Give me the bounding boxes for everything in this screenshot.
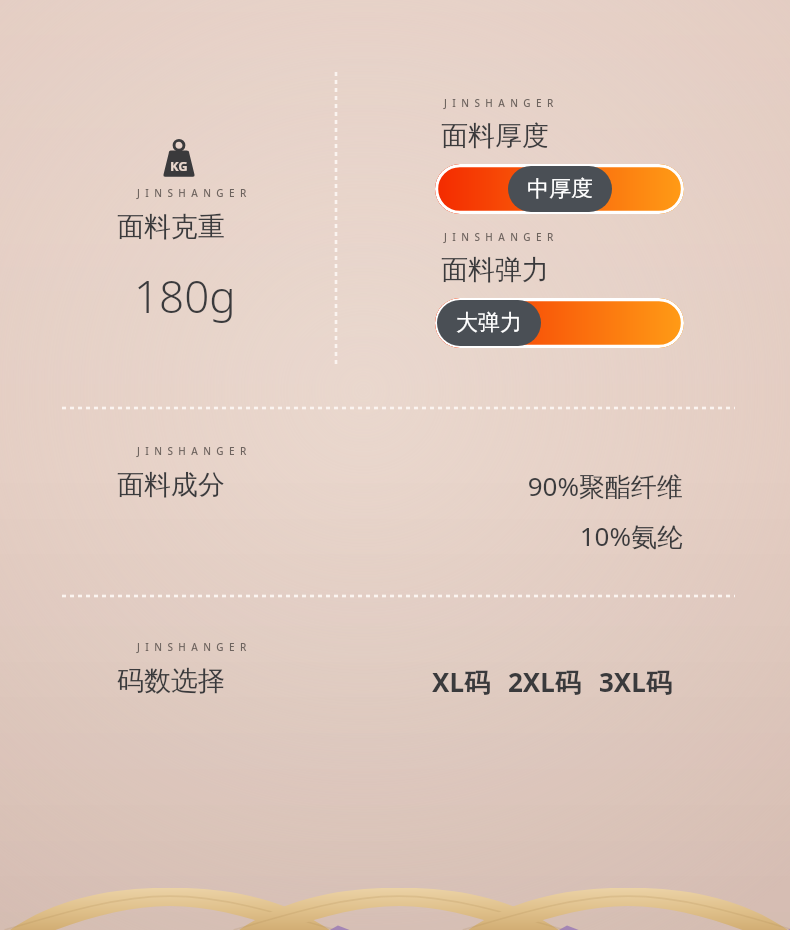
staticText: 面料成分 xyxy=(117,468,225,502)
staticText: KG xyxy=(170,157,188,175)
staticText: 中厚度 xyxy=(527,175,593,203)
staticText: 2XL码 xyxy=(508,664,581,700)
staticText: 面料克重 xyxy=(117,210,225,244)
button[interactable]: 大弹力 xyxy=(435,298,684,348)
staticText: 面料厚度 xyxy=(441,119,549,153)
staticText: 10%氨纶 xyxy=(579,518,683,554)
button[interactable]: 中厚度 xyxy=(435,164,684,214)
staticText: J I N S H A N G E R xyxy=(137,444,248,458)
staticText: J I N S H A N G E R xyxy=(444,230,555,244)
button[interactable]: 3XL码 xyxy=(597,662,674,702)
staticText: J I N S H A N G E R xyxy=(444,96,555,110)
button[interactable]: 2XL码 xyxy=(506,662,583,702)
staticText: J I N S H A N G E R xyxy=(137,186,248,200)
staticText: 3XL码 xyxy=(599,664,672,700)
staticText: XL码 xyxy=(432,664,490,700)
staticText: 90%聚酯纤维 xyxy=(527,468,683,504)
staticText: J I N S H A N G E R xyxy=(137,640,248,654)
staticText: 大弹力 xyxy=(456,309,522,337)
staticText: 180g xyxy=(134,266,236,326)
staticText: 面料弹力 xyxy=(441,253,549,287)
other: Wooden hangers xyxy=(0,870,790,930)
staticText: 码数选择 xyxy=(117,664,225,698)
button[interactable]: XL码 xyxy=(430,662,492,702)
